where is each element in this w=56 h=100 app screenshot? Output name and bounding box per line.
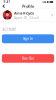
staticText: ACCOUNT — [3, 28, 16, 31]
staticText: 9:41 — [3, 0, 10, 4]
staticText: Sign Out — [22, 57, 34, 60]
button[interactable]: Sign Out — [2, 54, 54, 63]
button[interactable]: Ana Reyes — [0, 9, 56, 21]
staticText: Sign In — [23, 37, 33, 40]
staticText: Ana Reyes — [14, 10, 34, 16]
button[interactable]: Sign In — [2, 34, 54, 43]
button[interactable]: Back — [1, 3, 6, 9]
staticText: Profile — [22, 3, 34, 9]
staticText: Apple ID, iCloud — [14, 16, 39, 20]
